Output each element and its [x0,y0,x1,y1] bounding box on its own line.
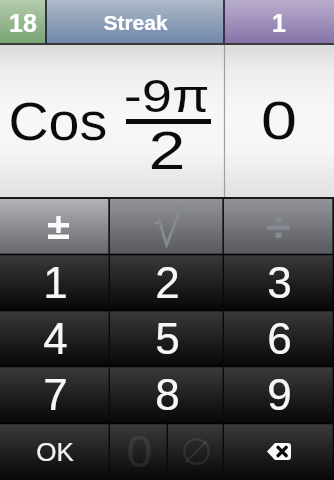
button[interactable]: 7 [0,366,110,423]
staticText: Cos [8,92,108,151]
staticText: 2 [155,258,180,307]
staticText: 0 [261,91,297,150]
staticText: -9π [123,70,209,121]
button[interactable]: 2 [110,254,224,310]
button[interactable]: Divide [224,199,334,254]
staticText: 6 [267,314,292,363]
staticText: 3 [267,258,292,307]
staticText: 4 [43,314,68,363]
button[interactable]: Backspace [224,423,334,480]
staticText: 9 [267,370,292,419]
button[interactable]: 3 [224,254,334,310]
button[interactable]: 1 [0,254,110,310]
staticText: 8 [155,370,180,419]
button[interactable]: 9 [224,366,334,423]
staticText: 18 [9,9,37,37]
button[interactable]: 6 [224,310,334,366]
staticText: 1 [272,9,286,37]
button[interactable]: 5 [110,310,224,366]
button[interactable]: 4 [0,310,110,366]
button[interactable]: OK [0,423,110,480]
button[interactable]: Empty set [168,423,224,480]
staticText: Streak [103,11,168,34]
staticText: 2 [148,121,186,180]
staticText: 7 [43,370,68,419]
button[interactable]: 8 [110,366,224,423]
button[interactable]: 0 [110,423,168,480]
button[interactable]: Plus minus [0,199,110,254]
staticText: 0 [126,427,153,476]
staticText: 5 [155,314,180,363]
button[interactable]: 1 [224,0,334,45]
button[interactable]: Streak [46,0,224,45]
staticText: 1 [43,258,68,307]
staticText: OK [36,437,74,466]
button[interactable]: 18 [0,0,46,45]
button[interactable]: Square root [110,199,224,254]
